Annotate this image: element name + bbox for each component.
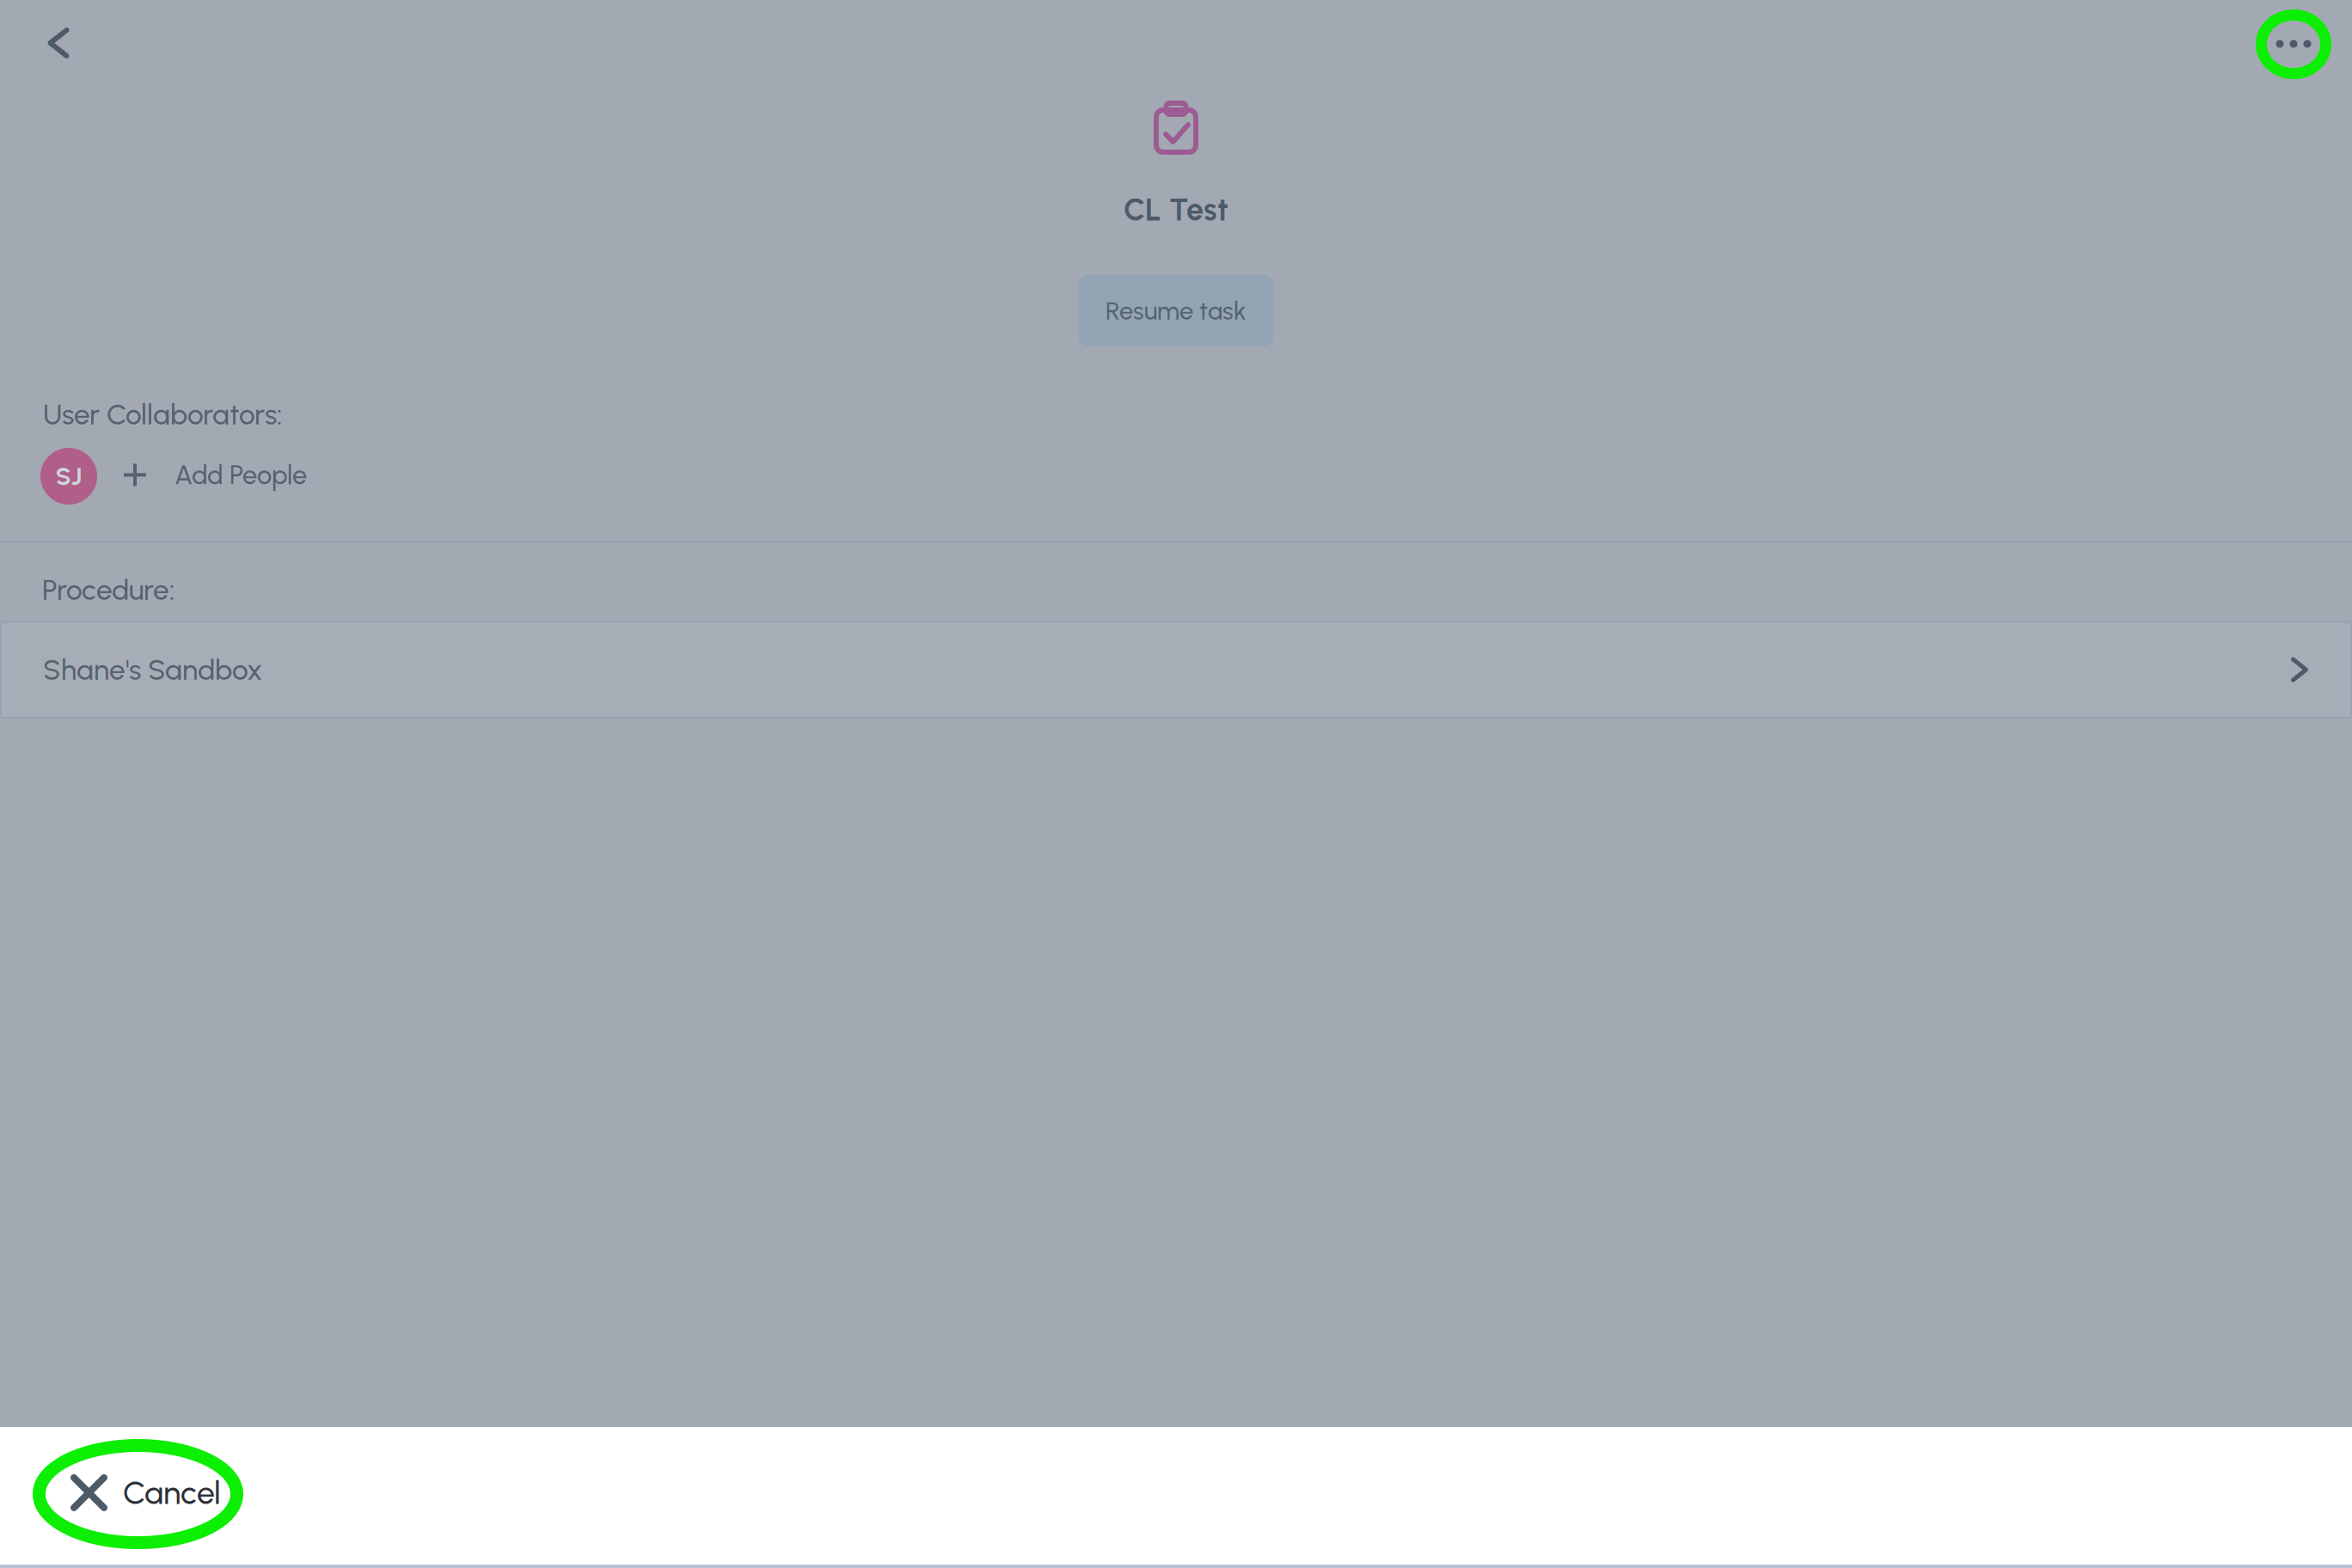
staticText: Cancel [123,1473,221,1512]
button[interactable]: Resume task [1078,275,1274,346]
button[interactable]: Cancel [0,1449,252,1536]
button[interactable]: Back [17,2,100,84]
staticText: CL Test [1124,191,1228,228]
staticText: SJ [55,461,82,491]
staticText: Shane's Sandbox [43,652,262,687]
staticText: Add People [175,459,307,491]
button[interactable]: Shane's Sandbox [0,621,2352,719]
staticText: Procedure: [42,573,175,607]
staticText: Resume task [1106,296,1246,326]
staticText: User Collaborators: [43,397,282,432]
button[interactable]: Add People [124,445,307,504]
button[interactable]: More options [2252,3,2335,85]
